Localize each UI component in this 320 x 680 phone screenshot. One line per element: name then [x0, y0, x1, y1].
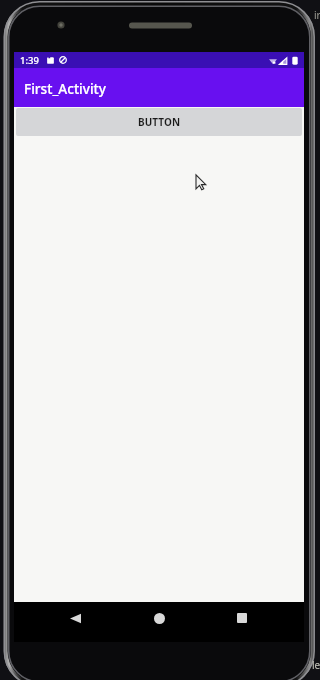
staticText: ir: [314, 8, 320, 22]
button[interactable]: BUTTON: [16, 108, 302, 136]
button[interactable]: Recent apps: [231, 607, 253, 629]
staticText: 1:39: [20, 54, 39, 67]
button[interactable]: Back: [64, 607, 86, 629]
button[interactable]: Home: [148, 607, 170, 629]
staticText: First_Activity: [24, 79, 106, 98]
staticText: le: [312, 658, 320, 672]
staticText: BUTTON: [138, 115, 181, 129]
